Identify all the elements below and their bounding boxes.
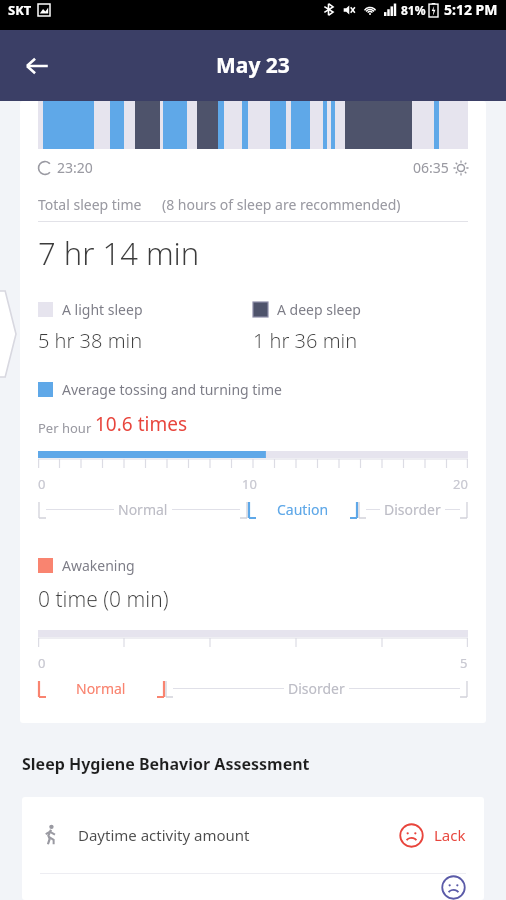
staticText: Disorder — [384, 500, 441, 519]
staticText: 20 — [453, 475, 468, 493]
button[interactable]: Daytime activity amount — [22, 797, 484, 873]
staticText: 5 hr 38 min — [38, 327, 143, 354]
staticText: Per hour — [38, 419, 95, 437]
staticText: 0 — [38, 475, 46, 493]
staticText: Average tossing and turning time — [62, 380, 282, 399]
staticText: A deep sleep — [277, 300, 361, 319]
staticText: SKT — [8, 1, 32, 19]
staticText: 10 — [242, 475, 257, 493]
button[interactable]: Back — [14, 43, 60, 89]
button[interactable]: Previous day — [0, 291, 16, 377]
staticText: May 23 — [216, 51, 290, 80]
button[interactable] — [22, 874, 484, 900]
staticText: Sleep Hygiene Behavior Assessment — [22, 753, 310, 775]
staticText: Disorder — [288, 679, 345, 698]
staticText: Normal — [118, 500, 168, 519]
staticText: 10.6 times — [95, 411, 187, 437]
staticText: (8 hours of sleep are recommended) — [162, 195, 401, 214]
staticText: 7 hr 14 min — [38, 232, 200, 274]
staticText: 06:35 — [413, 158, 449, 177]
staticText: 1 hr 36 min — [253, 327, 358, 354]
staticText: 81% — [401, 2, 426, 18]
staticText: 5 — [460, 654, 468, 672]
staticText: 0 time (0 min) — [38, 585, 169, 614]
staticText: 0 — [38, 654, 46, 672]
staticText: Total sleep time — [38, 195, 142, 214]
staticText: Daytime activity amount — [78, 825, 250, 845]
staticText: Normal — [76, 679, 126, 698]
staticText: Awakening — [62, 556, 135, 575]
staticText: Caution — [277, 500, 329, 519]
staticText: 5:12 PM — [444, 0, 498, 19]
staticText: A light sleep — [62, 300, 143, 319]
staticText: 23:20 — [57, 158, 93, 177]
staticText: Lack — [434, 825, 466, 845]
